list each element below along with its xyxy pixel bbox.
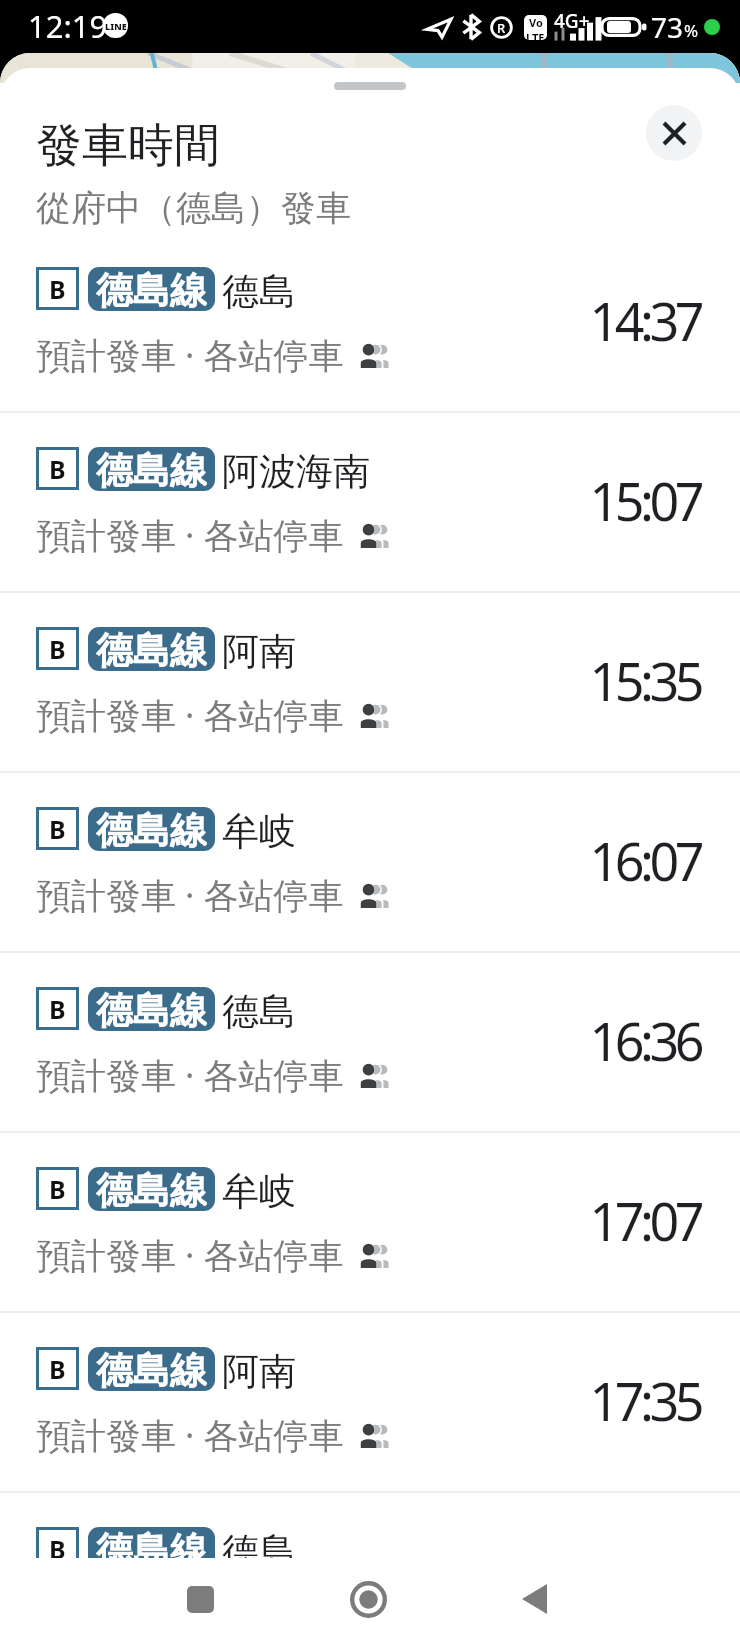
staticText: 預計發車 · 各站停車 — [36, 1231, 344, 1279]
button[interactable]: B — [0, 1133, 740, 1311]
staticText: 預計發車 · 各站停車 — [36, 1411, 344, 1459]
button[interactable]: B — [0, 233, 740, 411]
staticText: 德島線 — [96, 1347, 207, 1391]
staticText: LINE — [105, 20, 127, 32]
other: Occupancy: many seats available — [359, 523, 392, 548]
button[interactable]: B — [0, 1493, 740, 1645]
staticText: 阿南 — [222, 1348, 296, 1395]
staticText: 德島線 — [96, 267, 207, 311]
staticText: R — [497, 19, 506, 37]
staticText: % — [684, 19, 699, 42]
staticText: 德島線 — [96, 1167, 207, 1211]
staticText: 預計發車 · 各站停車 — [36, 691, 344, 739]
button[interactable]: Close — [646, 105, 702, 161]
button[interactable]: B — [0, 773, 740, 951]
button[interactable]: Back — [501, 1566, 567, 1632]
staticText: Vo — [529, 15, 543, 30]
staticText: B — [49, 452, 66, 486]
staticText: 14:37 — [589, 285, 700, 356]
other: Occupancy: many seats available — [359, 343, 392, 368]
staticText: B — [49, 1532, 66, 1566]
staticText: 德島線 — [96, 807, 207, 851]
staticText: 德島 — [222, 988, 296, 1035]
staticText: 15:07 — [589, 465, 700, 536]
staticText: 德島線 — [96, 1527, 207, 1571]
button[interactable]: B — [0, 953, 740, 1131]
staticText: 預計發車 · 各站停車 — [36, 871, 344, 919]
staticText: 4G+ — [554, 8, 590, 34]
staticText: B — [49, 272, 66, 306]
staticText: 德島線 — [96, 987, 207, 1031]
button[interactable]: B — [0, 1313, 740, 1491]
staticText: 17:35 — [589, 1365, 700, 1436]
staticText: 預計發車 · 各站停車 — [36, 331, 344, 379]
button[interactable]: Recent apps — [167, 1566, 233, 1632]
staticText: 德島線 — [96, 627, 207, 671]
staticText: 德島線 — [96, 447, 207, 491]
staticText: 德島 — [222, 268, 296, 315]
staticText: 預計發車 · 各站停車 — [36, 1051, 344, 1099]
staticText: 預計發車 · 各站停車 — [36, 511, 344, 559]
staticText: 發車時間 — [36, 117, 220, 175]
button[interactable]: B — [0, 593, 740, 771]
staticText: 16:36 — [589, 1005, 700, 1076]
other: Occupancy: many seats available — [359, 883, 392, 908]
staticText: B — [49, 812, 66, 846]
staticText: 德島 — [222, 1528, 296, 1575]
other: Occupancy: many seats available — [359, 703, 392, 728]
staticText: 從府中（德島）發車 — [36, 186, 351, 230]
other: Occupancy: many seats available — [359, 1063, 392, 1088]
staticText: LTE — [526, 30, 545, 40]
other: Occupancy: many seats available — [359, 1603, 392, 1628]
staticText: 牟岐 — [222, 1168, 296, 1215]
staticText: 阿南 — [222, 628, 296, 675]
staticText: B — [49, 1352, 66, 1386]
staticText: B — [49, 632, 66, 666]
staticText: 17:07 — [589, 1185, 700, 1256]
button[interactable]: Home — [335, 1566, 401, 1632]
staticText: B — [49, 1172, 66, 1206]
other: Occupancy: many seats available — [359, 1243, 392, 1268]
staticText: 牟岐 — [222, 808, 296, 855]
other: Occupancy: many seats available — [359, 1423, 392, 1448]
staticText: 12:19 — [28, 5, 108, 47]
staticText: 73 — [651, 8, 684, 46]
button[interactable]: B — [0, 413, 740, 591]
staticText: B — [49, 992, 66, 1026]
staticText: 15:35 — [589, 645, 700, 716]
staticText: 16:07 — [589, 825, 700, 896]
staticText: 阿波海南 — [222, 448, 370, 495]
staticText: 預計發車 · 各站停車 — [36, 1591, 344, 1639]
